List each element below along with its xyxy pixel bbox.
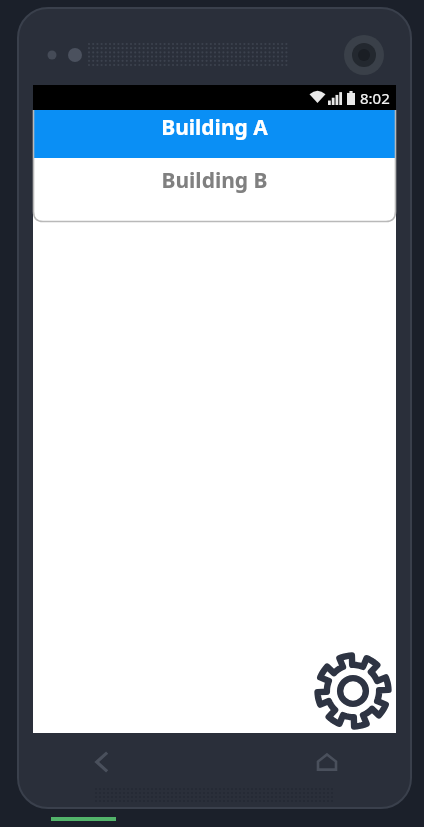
staticText: Building A [161, 113, 268, 142]
button[interactable]: Back [82, 742, 122, 782]
staticText: Building B [161, 166, 268, 195]
button[interactable]: Building A [33, 110, 396, 158]
button[interactable]: Building B [33, 158, 396, 222]
staticText: 8:02 [360, 88, 390, 108]
button[interactable]: Home [307, 742, 347, 782]
button[interactable]: Settings [311, 649, 395, 733]
